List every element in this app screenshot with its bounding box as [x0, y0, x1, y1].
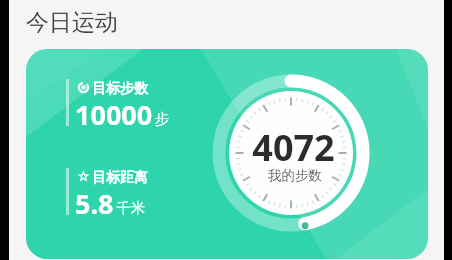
staticText: 我的步数 [268, 167, 322, 184]
staticText: 目标距离 [92, 169, 148, 187]
staticText: 今日运动 [26, 8, 118, 37]
staticText: 4072 [252, 123, 335, 172]
button[interactable]: 今日运动 步数卡片 [26, 49, 428, 259]
staticText: 目标步数 [92, 80, 148, 98]
staticText: 步 [155, 110, 170, 128]
staticText: 10000 [75, 96, 153, 133]
staticText: 千米 [116, 199, 145, 217]
staticText: 5.8 [75, 185, 114, 222]
